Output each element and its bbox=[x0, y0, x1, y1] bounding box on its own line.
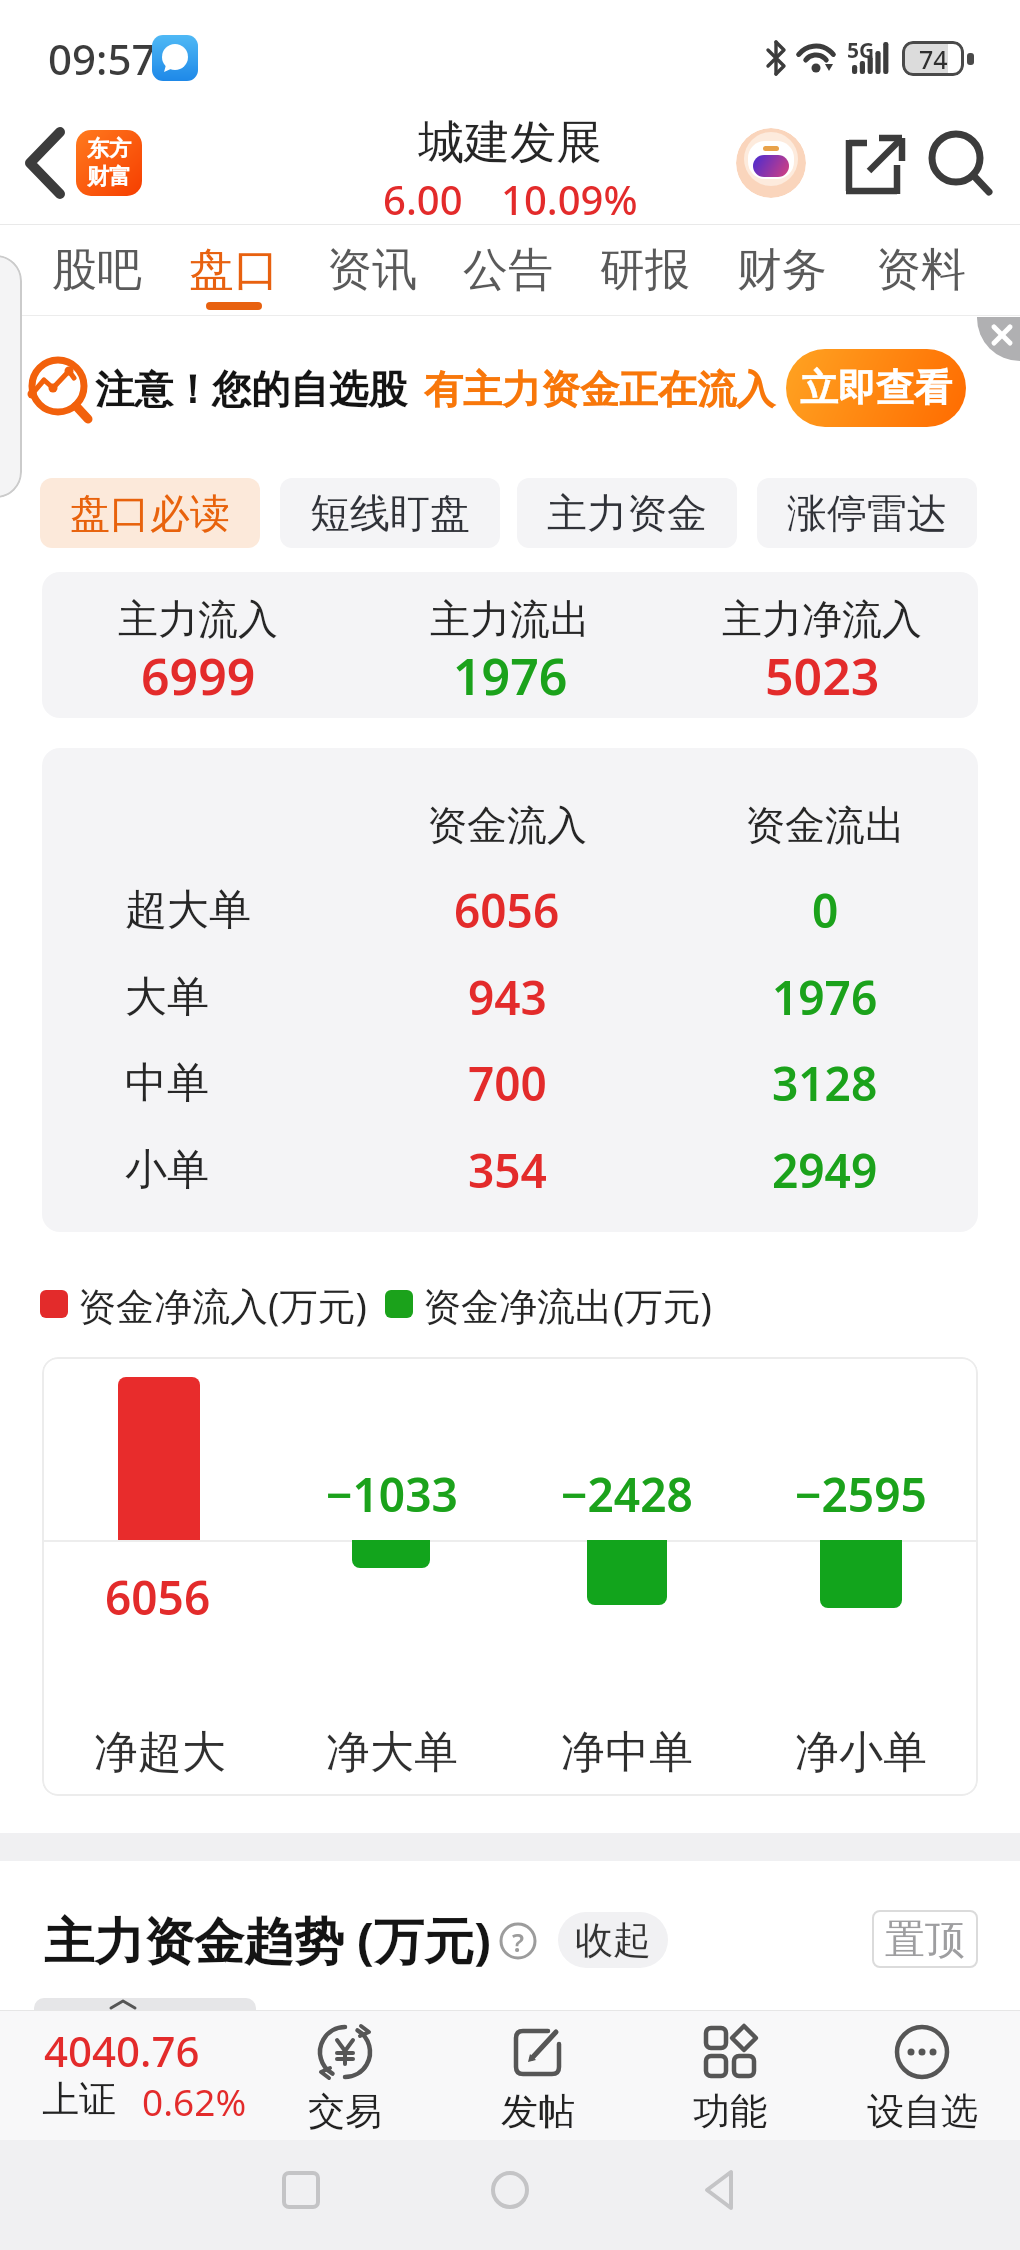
button[interactable]: 主力资金 bbox=[517, 478, 737, 548]
staticText: ? bbox=[512, 1924, 524, 1959]
button[interactable]: 4040.76 bbox=[20, 2014, 260, 2134]
staticText: 盘口 bbox=[189, 242, 279, 299]
staticText: 注意！您的自选股 bbox=[95, 365, 407, 414]
button[interactable] bbox=[845, 133, 907, 195]
staticText: 主力流出 bbox=[430, 594, 590, 640]
button[interactable]: 设自选 bbox=[837, 2014, 1007, 2134]
button[interactable]: 盘口必读 bbox=[40, 478, 260, 548]
staticText: 股吧 bbox=[52, 242, 142, 299]
staticText: 5023 bbox=[765, 642, 880, 704]
staticText: 74 bbox=[919, 42, 948, 76]
staticText: 设自选 bbox=[867, 2088, 978, 2132]
staticText: 小单 bbox=[125, 1144, 209, 1197]
staticText: 研报 bbox=[600, 242, 690, 299]
staticText: 净小单 bbox=[795, 1725, 927, 1777]
staticText: 1976 bbox=[453, 642, 568, 704]
button[interactable]: 财务 bbox=[712, 240, 852, 300]
staticText: 短线盯盘 bbox=[310, 488, 470, 538]
staticText: 主力流入 bbox=[118, 594, 278, 640]
button[interactable] bbox=[484, 2164, 536, 2216]
staticText: 10.09% bbox=[501, 172, 638, 220]
staticText: 净超大 bbox=[94, 1725, 226, 1777]
staticText: 大单 bbox=[125, 971, 209, 1024]
staticText: 中单 bbox=[125, 1057, 209, 1110]
staticText: 3128 bbox=[772, 1052, 878, 1115]
staticText: 1976 bbox=[772, 966, 878, 1029]
button[interactable] bbox=[698, 2164, 750, 2216]
staticText: 盘口必读 bbox=[70, 488, 230, 538]
staticText: 财务 bbox=[737, 242, 827, 299]
staticText: 354 bbox=[468, 1139, 547, 1202]
staticText: 主力资金 bbox=[547, 488, 707, 538]
button[interactable]: 研报 bbox=[575, 240, 715, 300]
staticText: 东方 bbox=[87, 135, 131, 163]
staticText: 功能 bbox=[693, 2088, 767, 2132]
staticText: 发帖 bbox=[501, 2088, 575, 2132]
staticText: 700 bbox=[468, 1052, 547, 1115]
button[interactable]: 涨停雷达 bbox=[757, 478, 977, 548]
staticText: 城建发展 bbox=[418, 114, 602, 172]
button[interactable]: 盘口 bbox=[164, 240, 304, 300]
button[interactable]: 发帖 bbox=[453, 2014, 623, 2134]
staticText: 4040.76 bbox=[44, 2022, 200, 2070]
staticText: −1033 bbox=[326, 1463, 458, 1519]
staticText: 2949 bbox=[772, 1139, 878, 1202]
button[interactable] bbox=[14, 120, 74, 204]
button[interactable]: 功能 bbox=[645, 2014, 815, 2134]
staticText: 公告 bbox=[463, 242, 553, 299]
staticText: 主力净流入 bbox=[722, 594, 922, 640]
button[interactable] bbox=[956, 317, 1020, 361]
staticText: 资金流入 bbox=[427, 800, 587, 850]
button[interactable]: 资讯 bbox=[302, 240, 442, 300]
button[interactable]: 交易 bbox=[260, 2014, 430, 2134]
staticText: 超大单 bbox=[125, 884, 251, 937]
button[interactable] bbox=[926, 128, 994, 198]
staticText: 主力资金趋势 (万元) bbox=[44, 1906, 491, 1970]
button[interactable]: 东方 bbox=[76, 130, 142, 196]
staticText: 资金流出 bbox=[745, 800, 905, 850]
staticText: 净大单 bbox=[326, 1725, 458, 1777]
button[interactable] bbox=[275, 2164, 327, 2216]
staticText: 资讯 bbox=[327, 242, 417, 299]
staticText: 6999 bbox=[141, 642, 256, 704]
staticText: 5G bbox=[847, 36, 875, 62]
button[interactable]: 股吧 bbox=[27, 240, 167, 300]
staticText: 财富 bbox=[87, 163, 131, 191]
button[interactable]: 资料 bbox=[851, 240, 991, 300]
staticText: 有主力资金正在流入 bbox=[424, 365, 775, 414]
staticText: 立即查看 bbox=[800, 364, 952, 412]
staticText: 资金净流入(万元) bbox=[78, 1279, 367, 1331]
staticText: 6056 bbox=[105, 1566, 211, 1622]
staticText: 0.62% bbox=[142, 2076, 247, 2120]
staticText: 上证 bbox=[42, 2076, 116, 2120]
button[interactable]: 公告 bbox=[438, 240, 578, 300]
button[interactable] bbox=[736, 128, 806, 198]
staticText: −2428 bbox=[561, 1463, 693, 1519]
staticText: 交易 bbox=[308, 2088, 382, 2132]
staticText: 6.00 bbox=[383, 172, 463, 220]
button[interactable]: 收起 bbox=[558, 1912, 668, 1968]
staticText: 09:57 bbox=[48, 30, 156, 82]
staticText: 涨停雷达 bbox=[787, 488, 947, 538]
staticText: 收起 bbox=[575, 1916, 651, 1964]
staticText: 6056 bbox=[454, 879, 560, 942]
staticText: 置顶 bbox=[885, 1914, 965, 1964]
staticText: 资料 bbox=[876, 242, 966, 299]
staticText: −2595 bbox=[795, 1463, 927, 1519]
button[interactable]: 置顶 bbox=[872, 1910, 978, 1968]
button[interactable]: 立即查看 bbox=[786, 349, 966, 427]
staticText: 净中单 bbox=[561, 1725, 693, 1777]
button[interactable]: ? bbox=[499, 1922, 537, 1960]
staticText: 资金净流出(万元) bbox=[423, 1279, 712, 1331]
staticText: 943 bbox=[468, 966, 547, 1029]
button[interactable]: 短线盯盘 bbox=[280, 478, 500, 548]
staticText: 0 bbox=[812, 879, 839, 942]
